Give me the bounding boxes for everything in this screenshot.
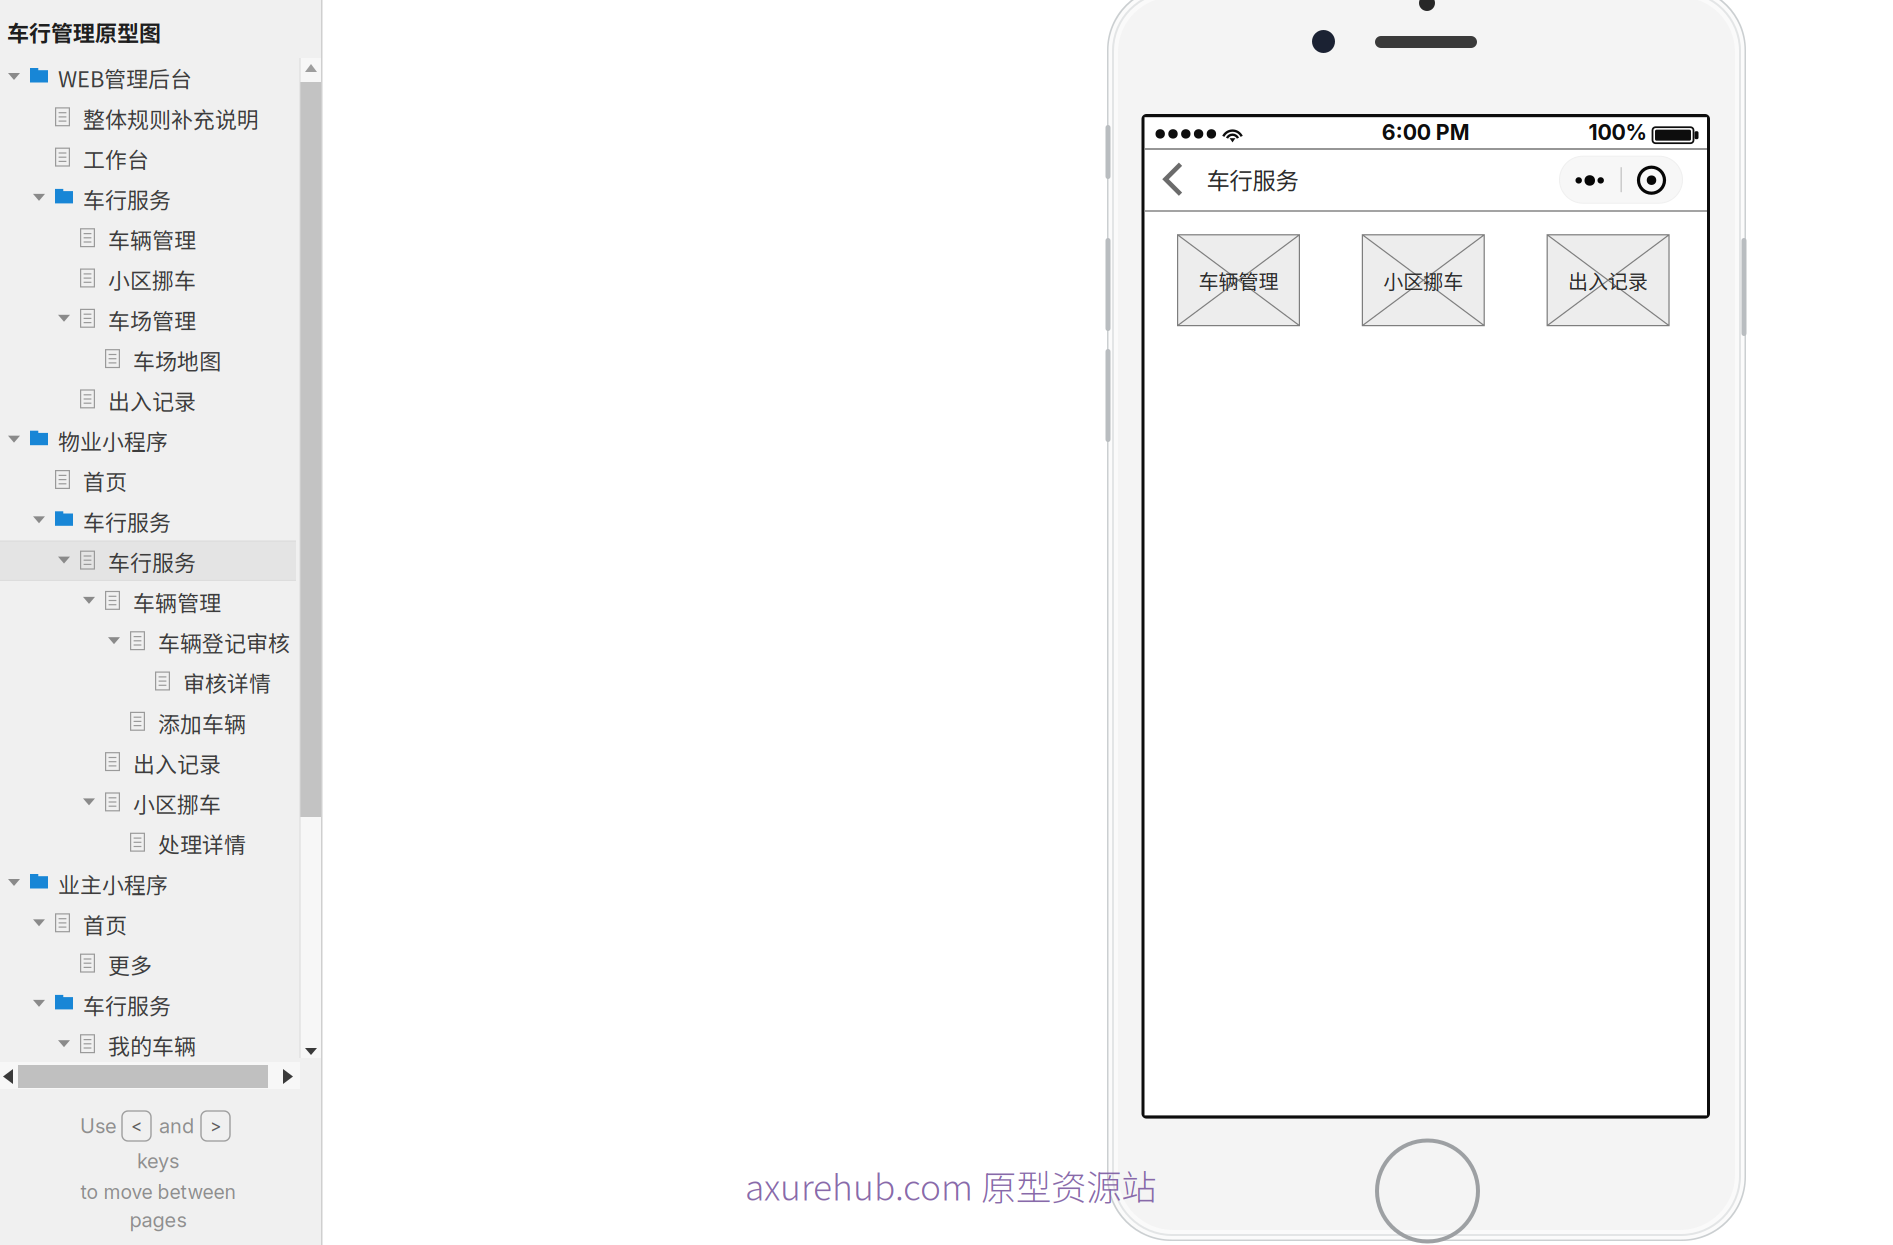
staticText: 100% <box>1588 119 1646 145</box>
button[interactable]: 车辆管理 <box>1177 234 1300 326</box>
staticText: 业主小程序 <box>58 868 168 900</box>
staticText: and <box>159 1114 194 1138</box>
button[interactable]: 车场管理 <box>0 299 299 339</box>
staticText: 车辆管理 <box>1198 266 1278 295</box>
button[interactable]: Scroll left <box>0 1066 18 1087</box>
button[interactable]: 车行服务 <box>0 541 299 581</box>
staticText: 小区挪车 <box>1383 266 1463 295</box>
staticText: 车行服务 <box>83 505 171 537</box>
button[interactable]: 更多 <box>0 944 299 984</box>
staticText: to move between <box>80 1180 235 1204</box>
button[interactable]: 首页 <box>0 903 299 944</box>
button[interactable]: 首页 <box>0 460 299 500</box>
button[interactable]: 出入记录 <box>0 742 299 782</box>
button[interactable]: 审核详情 <box>0 661 299 702</box>
staticText: 处理详情 <box>158 828 246 859</box>
staticText: Use <box>80 1114 117 1138</box>
button[interactable]: WEB管理后台 <box>0 57 299 97</box>
staticText: 车辆登记审核 <box>158 626 290 658</box>
button[interactable]: 处理详情 <box>0 823 299 863</box>
button[interactable]: 添加车辆 <box>0 702 299 742</box>
button[interactable]: 小区挪车 <box>1362 234 1485 326</box>
button[interactable]: Close mini program <box>1621 156 1682 203</box>
staticText: 车辆管理 <box>133 586 221 618</box>
button[interactable]: 小区挪车 <box>0 782 299 823</box>
staticText: 车场地图 <box>133 344 221 376</box>
button[interactable]: 我的车辆 <box>0 1024 299 1064</box>
staticText: axurehub.com 原型资源站 <box>745 1159 1156 1211</box>
staticText: 出入记录 <box>108 384 196 416</box>
staticText: pages <box>129 1208 186 1232</box>
staticText: keys <box>137 1149 179 1173</box>
button[interactable]: 车辆管理 <box>0 581 299 621</box>
button[interactable]: 车行服务 <box>0 178 299 218</box>
staticText: 首页 <box>83 465 127 497</box>
staticText: > <box>210 1115 221 1136</box>
button[interactable]: 车行服务 <box>0 500 299 541</box>
button[interactable]: Back <box>1144 148 1200 210</box>
button[interactable]: Scroll right <box>277 1066 298 1087</box>
button[interactable]: 车辆登记审核 <box>0 621 299 661</box>
staticText: 添加车辆 <box>158 707 246 738</box>
staticText: 出入记录 <box>1568 266 1648 295</box>
button[interactable]: 整体规则补充说明 <box>0 97 299 138</box>
staticText: 车行服务 <box>1206 162 1298 196</box>
staticText: 更多 <box>108 949 152 980</box>
staticText: 6:00 PM <box>1382 119 1470 145</box>
staticText: < <box>131 1115 142 1136</box>
staticText: 车辆管理 <box>108 223 196 255</box>
staticText: 车行服务 <box>108 546 196 577</box>
button[interactable]: 出入记录 <box>0 379 299 420</box>
button[interactable]: More <box>1559 156 1621 203</box>
staticText: 车行服务 <box>83 989 171 1021</box>
staticText: 小区挪车 <box>133 787 221 819</box>
staticText: 车行服务 <box>83 183 171 215</box>
button[interactable]: 小区挪车 <box>0 258 299 299</box>
staticText: 小区挪车 <box>108 263 196 295</box>
button[interactable]: 工作台 <box>0 138 299 178</box>
button[interactable]: 业主小程序 <box>0 863 299 903</box>
button[interactable]: 车场地图 <box>0 339 299 379</box>
staticText: 首页 <box>83 908 127 940</box>
button[interactable]: 车行服务 <box>0 984 299 1024</box>
staticText: 出入记录 <box>133 747 221 779</box>
staticText: WEB管理后台 <box>58 62 192 94</box>
button[interactable]: Scroll up <box>300 57 321 78</box>
button[interactable]: 物业小程序 <box>0 420 299 460</box>
staticText: 物业小程序 <box>58 425 168 456</box>
staticText: 车场管理 <box>108 304 196 335</box>
staticText: 我的车辆 <box>108 1029 196 1061</box>
button[interactable]: 出入记录 <box>1547 234 1670 326</box>
staticText: 整体规则补充说明 <box>83 102 259 134</box>
staticText: 车行管理原型图 <box>7 16 161 48</box>
button[interactable]: 车辆管理 <box>0 218 299 258</box>
staticText: 工作台 <box>83 143 149 174</box>
button[interactable]: Scroll down <box>300 1041 321 1062</box>
staticText: 审核详情 <box>183 666 271 698</box>
